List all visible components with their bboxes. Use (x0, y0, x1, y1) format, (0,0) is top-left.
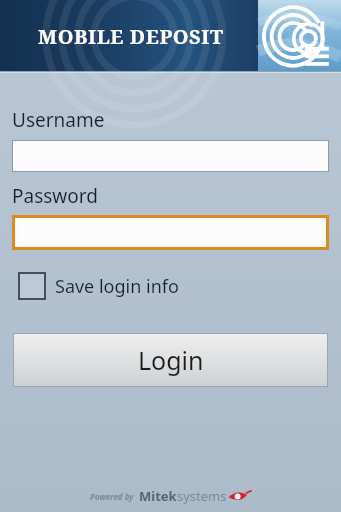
staticText: Mitek (139, 487, 177, 505)
staticText: Save login info (55, 274, 179, 299)
staticText: Login (138, 343, 204, 377)
staticText: systems (177, 487, 227, 505)
staticText: Password (12, 183, 98, 209)
staticText: MOBILE DEPOSIT (38, 23, 224, 50)
staticText: Username (12, 107, 105, 133)
button[interactable]: Save login info (18, 272, 179, 300)
button[interactable]: Login (13, 333, 328, 387)
staticText: Powered by (90, 491, 134, 502)
